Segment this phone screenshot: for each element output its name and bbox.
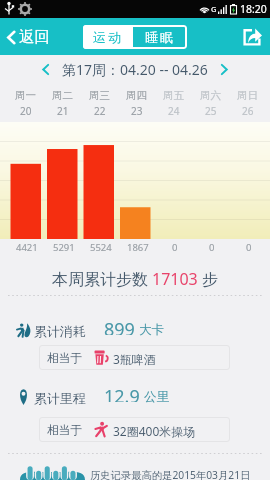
staticText: 运动 bbox=[93, 29, 124, 45]
staticText: 公里 bbox=[144, 389, 169, 405]
staticText: 累计消耗 bbox=[34, 324, 86, 340]
staticText: 4421 bbox=[16, 241, 38, 253]
staticText: 相当于 bbox=[47, 351, 83, 366]
staticText: 周五 bbox=[163, 89, 184, 102]
staticText: 周日 bbox=[237, 89, 258, 102]
button[interactable]: 周二 bbox=[44, 85, 81, 122]
staticText: 周一 bbox=[15, 89, 36, 102]
staticText: 周六 bbox=[200, 89, 221, 102]
button[interactable]: 返回 bbox=[0, 19, 60, 55]
staticText: 0 bbox=[246, 241, 252, 253]
staticText: 25 bbox=[205, 104, 217, 118]
staticText: G bbox=[211, 4, 217, 14]
button[interactable]: Next week bbox=[215, 56, 233, 82]
staticText: 第17周：04.20 -- 04.26 bbox=[62, 60, 208, 79]
staticText: 睡眠 bbox=[145, 29, 176, 45]
staticText: 历史记录最高的是2015年03月21日 bbox=[90, 468, 251, 480]
button[interactable]: 相当于 bbox=[39, 417, 230, 442]
button[interactable]: 周日 bbox=[229, 85, 266, 122]
button[interactable]: 周五 bbox=[155, 85, 192, 122]
button[interactable]: 累计消耗 bbox=[0, 321, 270, 339]
staticText: 本周累计步数 bbox=[52, 270, 148, 290]
staticText: 3瓶啤酒 bbox=[113, 351, 156, 367]
staticText: 返回 bbox=[19, 27, 50, 47]
button[interactable]: 睡眠 bbox=[133, 25, 187, 49]
button[interactable]: 周三 bbox=[81, 85, 118, 122]
staticText: 26 bbox=[242, 104, 254, 118]
staticText: 0 bbox=[172, 241, 178, 253]
staticText: 22 bbox=[94, 104, 106, 118]
staticText: 899 bbox=[104, 317, 135, 335]
staticText: 相当于 bbox=[47, 423, 83, 438]
staticText: 5291 bbox=[53, 241, 75, 253]
button[interactable]: 周一 bbox=[7, 85, 44, 122]
staticText: 周三 bbox=[89, 89, 110, 102]
staticText: 12.9 bbox=[104, 384, 140, 402]
button[interactable]: 周六 bbox=[192, 85, 229, 122]
button[interactable]: 运动 bbox=[83, 25, 133, 49]
staticText: 周二 bbox=[52, 89, 73, 102]
button[interactable]: 历史记录最高的是2015年03月21日 bbox=[0, 462, 270, 480]
staticText: 32圈400米操场 bbox=[113, 423, 196, 439]
staticText: 24 bbox=[168, 104, 180, 118]
staticText: 1867 bbox=[127, 241, 149, 253]
button[interactable]: 相当于 bbox=[39, 345, 230, 370]
staticText: 周四 bbox=[126, 89, 147, 102]
staticText: 累计里程 bbox=[34, 391, 86, 407]
staticText: 5524 bbox=[90, 241, 112, 253]
staticText: 18:20 bbox=[240, 2, 267, 16]
staticText: 23 bbox=[131, 104, 143, 118]
staticText: 步 bbox=[202, 270, 218, 290]
button[interactable]: Previous week bbox=[36, 56, 54, 82]
button[interactable]: Share bbox=[233, 18, 270, 55]
button[interactable]: 累计里程 bbox=[0, 388, 270, 406]
staticText: 大卡 bbox=[139, 322, 164, 338]
staticText: 0 bbox=[209, 241, 215, 253]
staticText: 21 bbox=[57, 104, 69, 118]
staticText: 20 bbox=[20, 104, 32, 118]
button[interactable]: 周四 bbox=[118, 85, 155, 122]
staticText: 17103 bbox=[152, 268, 198, 290]
